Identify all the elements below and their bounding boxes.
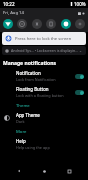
staticText: Manage notifications (3, 60, 56, 67)
button[interactable]: Flashlight (61, 19, 71, 29)
staticText: Notification (16, 70, 41, 76)
button[interactable]: Floating Button (0, 86, 88, 98)
button[interactable]: Theme (0, 112, 88, 124)
button[interactable]: Notification (0, 70, 88, 82)
other: Settings (78, 11, 85, 16)
staticText: Floating Button (16, 86, 49, 92)
button[interactable]: Press here to lock the screen (2, 32, 86, 45)
button[interactable]: Battery saver (46, 19, 56, 29)
staticText: Fri, Aug 14 (3, 10, 24, 16)
button[interactable]: Bluetooth (32, 19, 42, 29)
button[interactable]: Back (13, 165, 25, 177)
button[interactable]: Home (38, 165, 50, 177)
staticText: Press here to lock the screen (15, 36, 72, 42)
button[interactable]: Help (0, 138, 88, 150)
other: Theme (4, 115, 10, 121)
staticText: ⌄ (79, 49, 83, 53)
button[interactable]: Toggle (75, 74, 84, 79)
staticText: Lock with a floating button (16, 93, 64, 98)
staticText: More (16, 129, 27, 135)
button[interactable]: Recents (63, 165, 75, 177)
button[interactable]: Wi-Fi (3, 19, 13, 29)
button[interactable]: Add tile (75, 19, 85, 29)
staticText: Help using the app (16, 145, 50, 150)
staticText: Theme (16, 103, 30, 109)
button[interactable]: Toggle (75, 90, 84, 95)
staticText: Dark (16, 119, 25, 124)
staticText: 100% (74, 1, 86, 7)
staticText: App Theme (16, 112, 40, 118)
button[interactable]: Android Sys… • Lockscreen is displaying … (2, 46, 86, 55)
button[interactable]: Do not disturb (17, 19, 27, 29)
staticText: Android Sys… • Lockscreen is displaying … (11, 48, 79, 53)
staticText: Lock from Notification (16, 77, 56, 82)
staticText: 10:22 (3, 1, 15, 7)
staticText: Help (16, 138, 26, 144)
